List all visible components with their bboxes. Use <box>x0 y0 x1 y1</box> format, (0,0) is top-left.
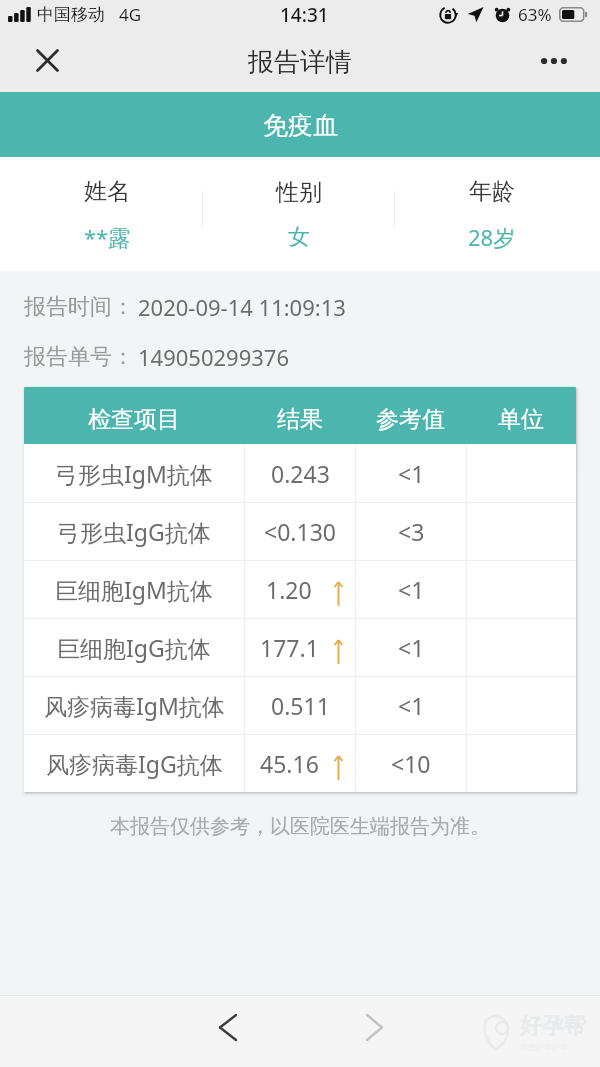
staticText: 年龄 <box>469 177 515 206</box>
staticText: 巨细胞IgG抗体 <box>57 632 211 663</box>
staticText: <0.130 <box>264 516 336 547</box>
button[interactable]: Forward <box>352 1005 396 1049</box>
staticText: 2020-09-14 11:09:13 <box>138 292 346 322</box>
staticText: 63% <box>518 3 552 26</box>
staticText: 姓名 <box>84 177 130 206</box>
staticText: 风疹病毒IgM抗体 <box>44 690 225 721</box>
staticText: <1 <box>398 574 425 605</box>
staticText: 报告单号： <box>24 343 134 371</box>
staticText: 4G <box>119 3 142 26</box>
staticText: 149050299376 <box>138 342 290 372</box>
staticText: 14:31 <box>280 2 329 28</box>
button[interactable]: Back <box>206 1005 250 1049</box>
staticText: <1 <box>398 690 425 721</box>
staticText: 本报告仅供参考，以医院医生端报告为准。 <box>0 814 600 839</box>
staticText: 好孕帮 <box>520 1012 586 1040</box>
staticText: 177.1 <box>260 632 319 663</box>
staticText: 巨细胞IgM抗体 <box>55 574 213 605</box>
staticText: 中国移动 <box>37 4 105 25</box>
staticText: 弓形虫IgM抗体 <box>55 458 213 489</box>
staticText: 报告详情 <box>248 46 352 79</box>
staticText: 检查项目 <box>88 405 180 434</box>
staticText: 单位 <box>498 405 544 434</box>
staticText: <1 <box>398 632 425 663</box>
staticText: 弓形虫IgG抗体 <box>57 516 211 547</box>
staticText: 报告时间： <box>24 293 134 321</box>
staticText: 结果 <box>277 405 323 434</box>
staticText: 女 <box>288 223 310 251</box>
staticText: 免疫血 <box>263 110 338 141</box>
staticText: 助您好孕好孕 <box>520 1042 568 1052</box>
staticText: 1.20 <box>266 574 312 605</box>
staticText: 28岁 <box>468 222 516 252</box>
button[interactable]: Close <box>25 38 69 82</box>
staticText: <10 <box>391 748 431 779</box>
button[interactable]: More options <box>532 39 576 83</box>
staticText: 45.16 <box>260 748 319 779</box>
staticText: 参考值 <box>376 405 445 434</box>
staticText: 风疹病毒IgG抗体 <box>46 748 223 779</box>
staticText: 性别 <box>276 178 322 207</box>
staticText: 0.243 <box>271 458 330 489</box>
staticText: <3 <box>398 516 425 547</box>
staticText: <1 <box>398 458 425 489</box>
staticText: 0.511 <box>271 690 330 721</box>
staticText: **露 <box>84 222 131 252</box>
